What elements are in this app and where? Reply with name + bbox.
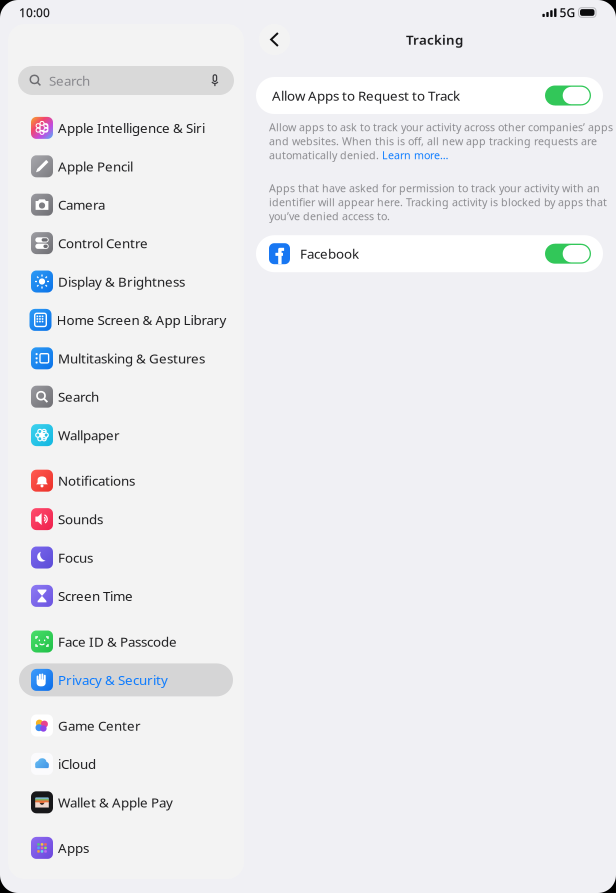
staticText: 5G [559, 4, 575, 20]
staticText: Apple Intelligence & Siri [58, 119, 205, 137]
staticText: Privacy & Security [58, 671, 168, 689]
button[interactable]: Apps [8, 819, 244, 864]
staticText: Search [49, 72, 90, 89]
button[interactable]: Search [8, 375, 244, 413]
staticText: Face ID & Passcode [58, 633, 177, 650]
button[interactable]: Home Screen & App Library [8, 298, 244, 336]
staticText: Multitasking & Gestures [58, 349, 205, 367]
button[interactable]: Face ID & Passcode [8, 612, 244, 658]
button[interactable]: Multitasking & Gestures [8, 336, 244, 375]
staticText: Apps that have asked for permission to t… [269, 181, 600, 195]
staticText: and websites. When this is off, all new … [269, 134, 597, 148]
button[interactable]: Apple Pencil [8, 144, 244, 183]
button[interactable]: Back [259, 24, 290, 55]
staticText: iCloud [58, 755, 96, 773]
staticText: Sounds [58, 510, 103, 528]
staticText: identifier will appear here. Tracking ac… [269, 195, 607, 209]
staticText: Allow Apps to Request to Track [272, 87, 460, 104]
button[interactable]: Sounds [8, 497, 244, 536]
staticText: 10:00 [19, 4, 50, 20]
staticText: Learn more… [382, 148, 448, 162]
staticText: Apple Pencil [58, 157, 133, 175]
button[interactable]: Wallet & Apple Pay [8, 780, 244, 819]
button[interactable]: Search [18, 66, 234, 95]
button[interactable]: Focus [8, 536, 244, 574]
staticText: Screen Time [58, 587, 133, 605]
staticText: Tracking [406, 31, 463, 48]
staticText: Apps [58, 839, 89, 857]
staticText: automatically denied. [269, 148, 382, 162]
staticText: Wallet & Apple Pay [58, 793, 173, 811]
staticText: Allow apps to ask to track your activity… [269, 120, 613, 134]
button[interactable]: Display & Brightness [8, 260, 244, 298]
button[interactable]: Learn more… [382, 148, 448, 162]
button[interactable]: Screen Time [8, 574, 244, 612]
button[interactable]: Camera [8, 183, 244, 221]
staticText: Control Centre [58, 234, 148, 252]
staticText: Display & Brightness [58, 273, 185, 290]
staticText: Search [58, 388, 99, 405]
button[interactable]: Facebook [256, 235, 603, 272]
button[interactable]: Allow Apps to Request to Track [256, 77, 603, 114]
button[interactable]: Wallpaper [8, 413, 244, 452]
button[interactable]: Privacy & Security [8, 658, 244, 696]
staticText: Camera [58, 196, 105, 213]
button[interactable]: Control Centre [8, 221, 244, 260]
staticText: Home Screen & App Library [56, 311, 226, 329]
staticText: you’ve denied access to. [269, 209, 390, 223]
staticText: Focus [58, 549, 93, 566]
staticText: Notifications [58, 472, 135, 489]
button[interactable]: Game Center [8, 696, 244, 742]
staticText: Facebook [300, 245, 359, 262]
button[interactable]: Notifications [8, 452, 244, 497]
staticText: Game Center [58, 717, 141, 734]
button[interactable]: Apple Intelligence & Siri [8, 95, 244, 144]
staticText: Wallpaper [58, 426, 120, 444]
button[interactable]: iCloud [8, 742, 244, 780]
